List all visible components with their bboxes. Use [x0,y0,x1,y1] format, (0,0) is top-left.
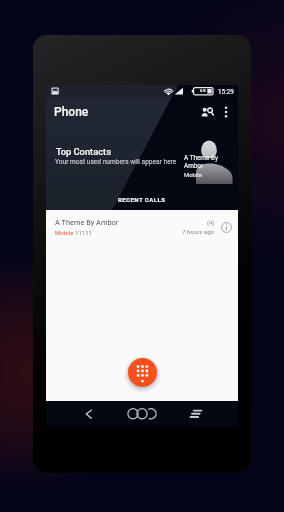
button[interactable]: Search contacts [197,102,217,122]
staticText: 15:29 [218,88,234,96]
button[interactable]: Dialpad [128,358,157,387]
staticText: Mobile [55,229,75,236]
staticText: Top Contacts [56,146,111,157]
staticText: Your most used numbers will appear here [55,158,177,166]
staticText: A Theme By [184,154,218,162]
staticText: Mobile [184,172,202,179]
staticText: 11111 [75,229,93,236]
staticText: RECENT CALLS [118,196,166,203]
staticText: A Theme By Ambor [55,218,119,227]
button[interactable]: Recent apps [152,401,174,427]
button[interactable]: Call details [217,218,235,236]
button[interactable]: A Theme By [184,132,233,184]
button[interactable]: Back [78,401,100,427]
staticText: Ambor [184,162,204,170]
button[interactable]: Home [111,401,141,427]
button[interactable]: RECENT CALLS [46,189,238,210]
staticText: 6% [200,88,206,93]
staticText: 7 hours ago [182,228,215,235]
button[interactable]: More options [218,104,234,120]
staticText: Phone [54,105,89,119]
button[interactable]: A Theme By Ambor [46,210,238,244]
staticText: (4) [207,219,215,226]
